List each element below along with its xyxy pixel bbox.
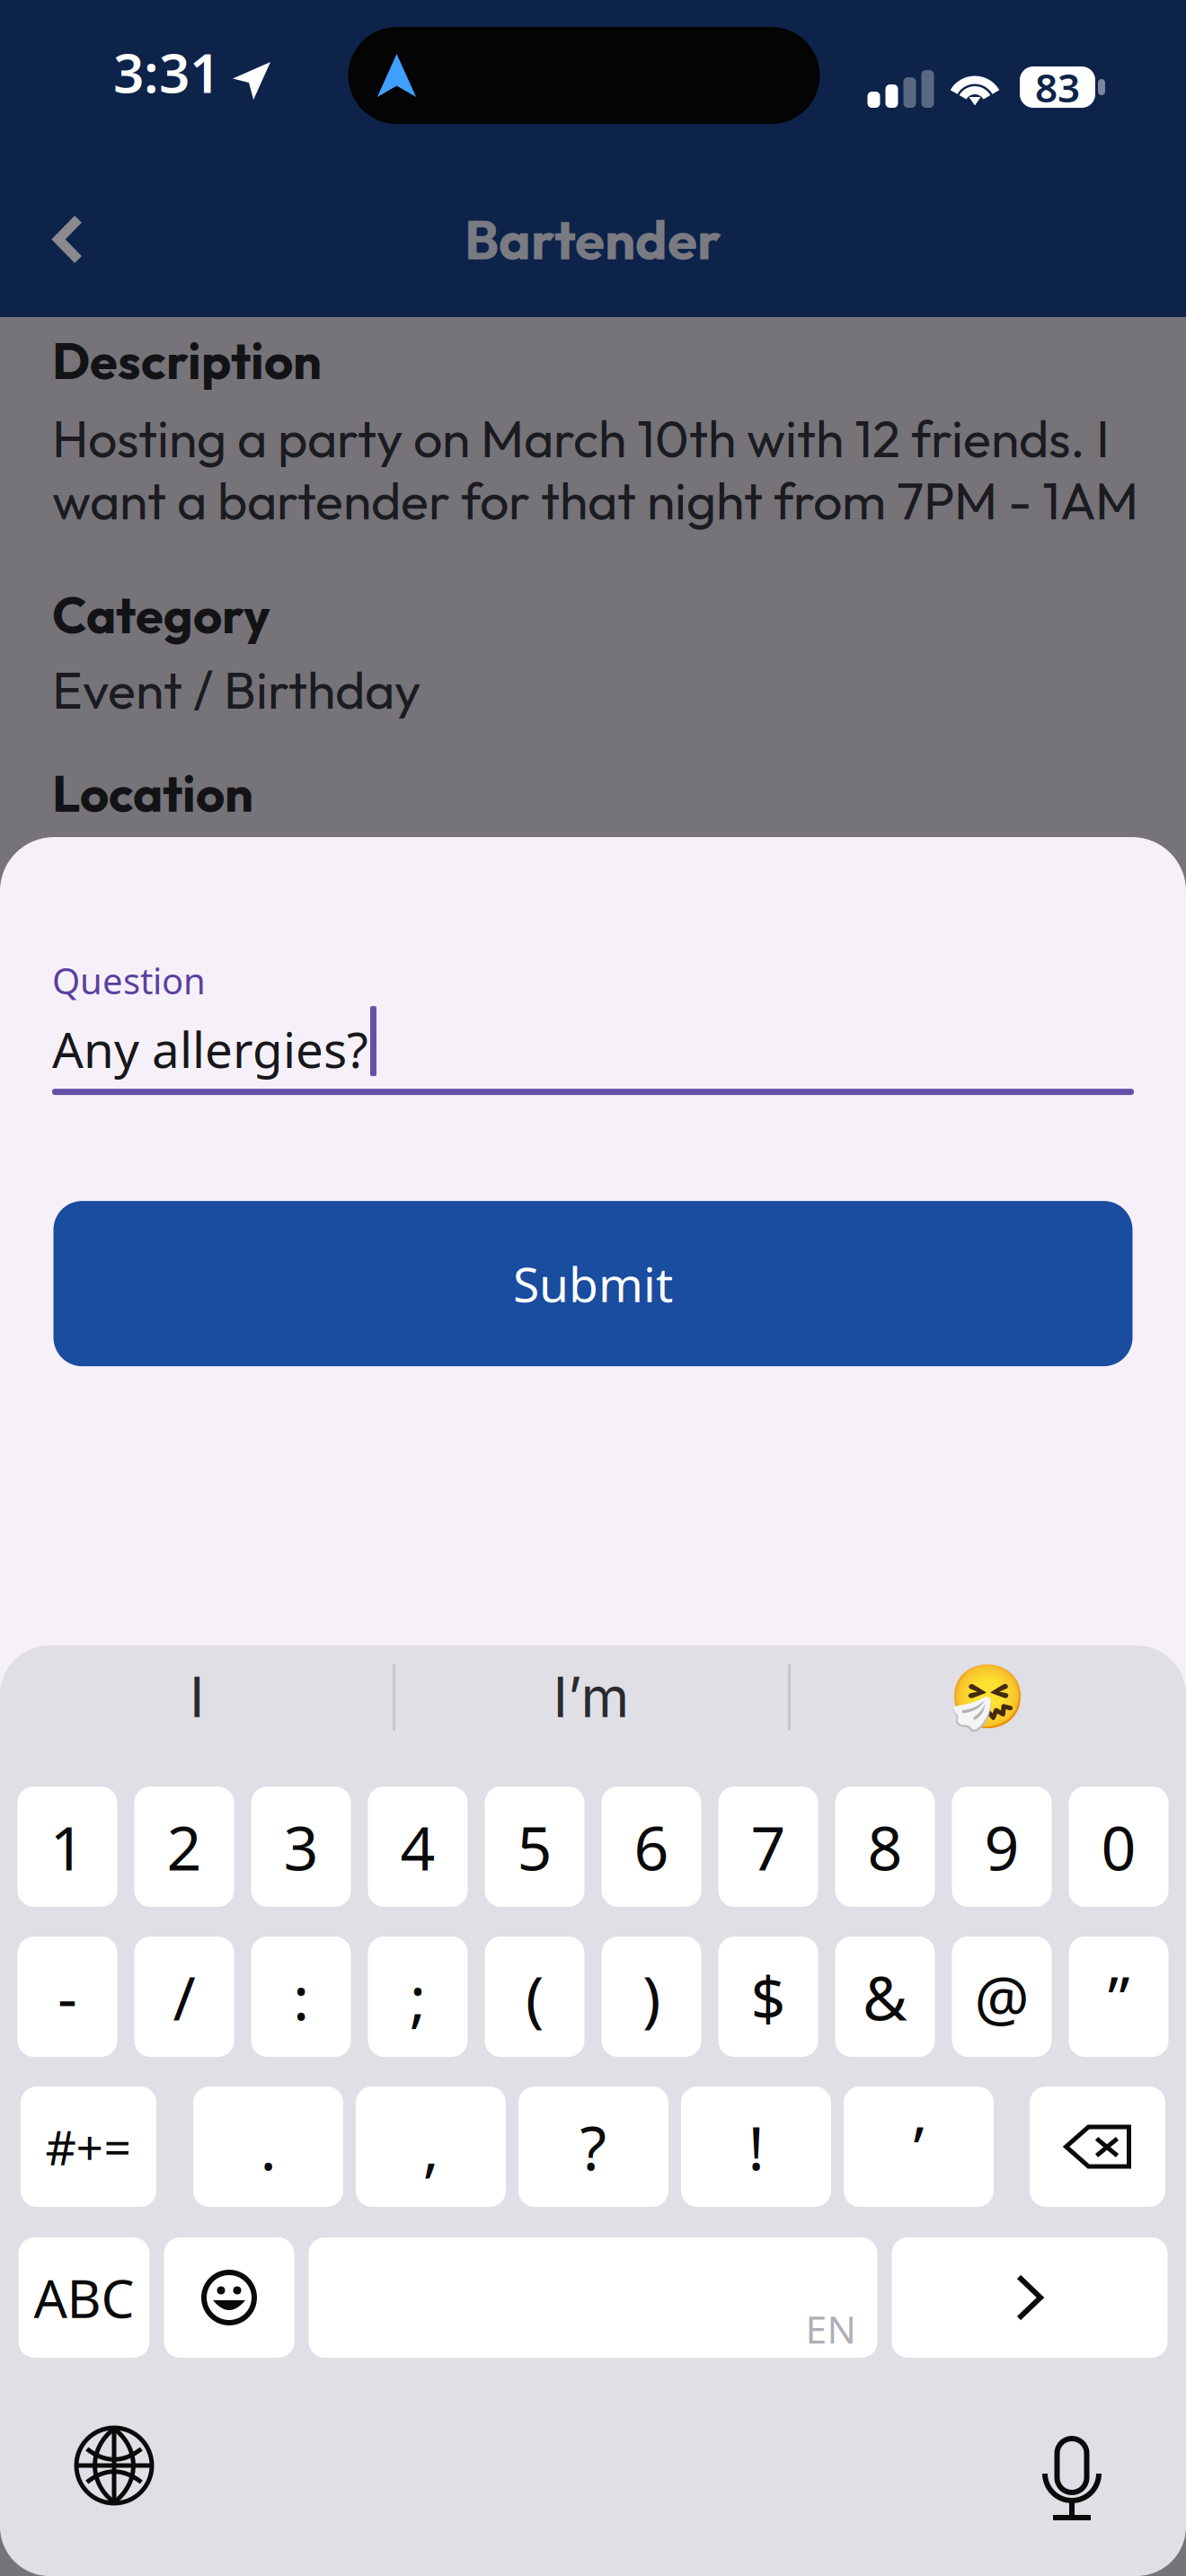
button[interactable]: 🤧 [789,1647,1186,1747]
button[interactable]: . [193,2086,343,2207]
staticText: - [58,1956,77,2037]
staticText: Category [52,583,270,646]
button[interactable]: ) [602,1936,701,2057]
staticText: , [423,2106,439,2187]
staticText: Hosting a party on March 10th with 12 fr… [52,406,1110,470]
button[interactable]: ? [518,2086,668,2207]
button[interactable]: Return [892,2237,1168,2358]
staticText: ” [1108,1956,1129,2037]
staticText: 0 [1101,1806,1136,1887]
button[interactable]: Next keyboard [56,2412,173,2519]
button[interactable]: 4 [368,1786,468,1907]
button[interactable]: Delete [1030,2086,1165,2207]
staticText: #+= [45,2115,132,2178]
button[interactable]: & [835,1936,935,2057]
button[interactable]: 9 [952,1786,1052,1907]
staticText: 🤧 [949,1662,1026,1733]
button[interactable]: / [134,1936,234,2057]
staticText: 5 [517,1806,552,1887]
staticText: I’m [553,1664,629,1730]
staticText: ; [410,1956,426,2037]
button[interactable]: @ [952,1936,1052,2057]
staticText: 1 [50,1806,85,1887]
staticText: Submit [513,1252,673,1315]
staticText: ( [526,1956,544,2037]
button[interactable]: ABC [18,2237,150,2358]
button[interactable]: I’m [394,1647,789,1747]
button[interactable]: ” [1069,1936,1168,2057]
button[interactable]: 5 [485,1786,584,1907]
button[interactable]: ! [681,2086,831,2207]
staticText: ABC [34,2263,134,2333]
button[interactable]: $ [718,1936,818,2057]
staticText: I [190,1664,204,1730]
staticText: ! [748,2106,764,2187]
button[interactable]: Dictation [1013,2412,1130,2519]
staticText: ’ [913,2106,924,2187]
staticText: $ [751,1956,786,2037]
button[interactable]: 2 [134,1786,234,1907]
staticText: 8 [867,1806,903,1887]
staticText: Event / Birthday [52,657,420,722]
button[interactable]: 0 [1069,1786,1168,1907]
staticText: Bartender [465,205,721,273]
staticText: 9 [984,1806,1019,1887]
staticText: 6 [634,1806,669,1887]
button[interactable]: , [356,2086,506,2207]
button[interactable]: #+= [21,2086,156,2207]
staticText: Location [52,761,253,825]
button[interactable]: Emoji [164,2237,294,2358]
button[interactable]: Submit [53,1201,1133,1366]
button[interactable]: space [309,2237,877,2358]
staticText: 2 [167,1806,202,1887]
staticText: 3:31 [113,36,220,108]
staticText: Description [52,329,322,392]
staticText: ? [580,2106,607,2187]
staticText: want a bartender for that night from 7PM… [52,468,1138,533]
button[interactable]: 3 [251,1786,351,1907]
button[interactable]: ; [368,1936,468,2057]
button[interactable]: 6 [602,1786,701,1907]
staticText: 3 [283,1806,319,1887]
button[interactable]: 8 [835,1786,935,1907]
staticText: EN [805,2303,856,2354]
staticText: @ [974,1956,1029,2037]
button[interactable]: ’ [844,2086,994,2207]
staticText: 4 [400,1806,435,1887]
staticText: & [863,1956,907,2037]
staticText: ) [642,1956,660,2037]
staticText: 83 [1035,61,1080,113]
button[interactable]: : [251,1936,351,2057]
button[interactable]: Back [18,185,119,293]
button[interactable]: 7 [718,1786,818,1907]
staticText: . [260,2106,276,2187]
staticText: 7 [751,1806,786,1887]
staticText: Any allergies? [52,1016,368,1082]
button[interactable]: ( [485,1936,584,2057]
button[interactable]: I [0,1647,394,1747]
staticText: Question [52,957,206,1004]
staticText: : [293,1956,309,2037]
button[interactable]: - [18,1936,117,2057]
button[interactable]: 1 [18,1786,117,1907]
staticText: / [173,1956,195,2037]
